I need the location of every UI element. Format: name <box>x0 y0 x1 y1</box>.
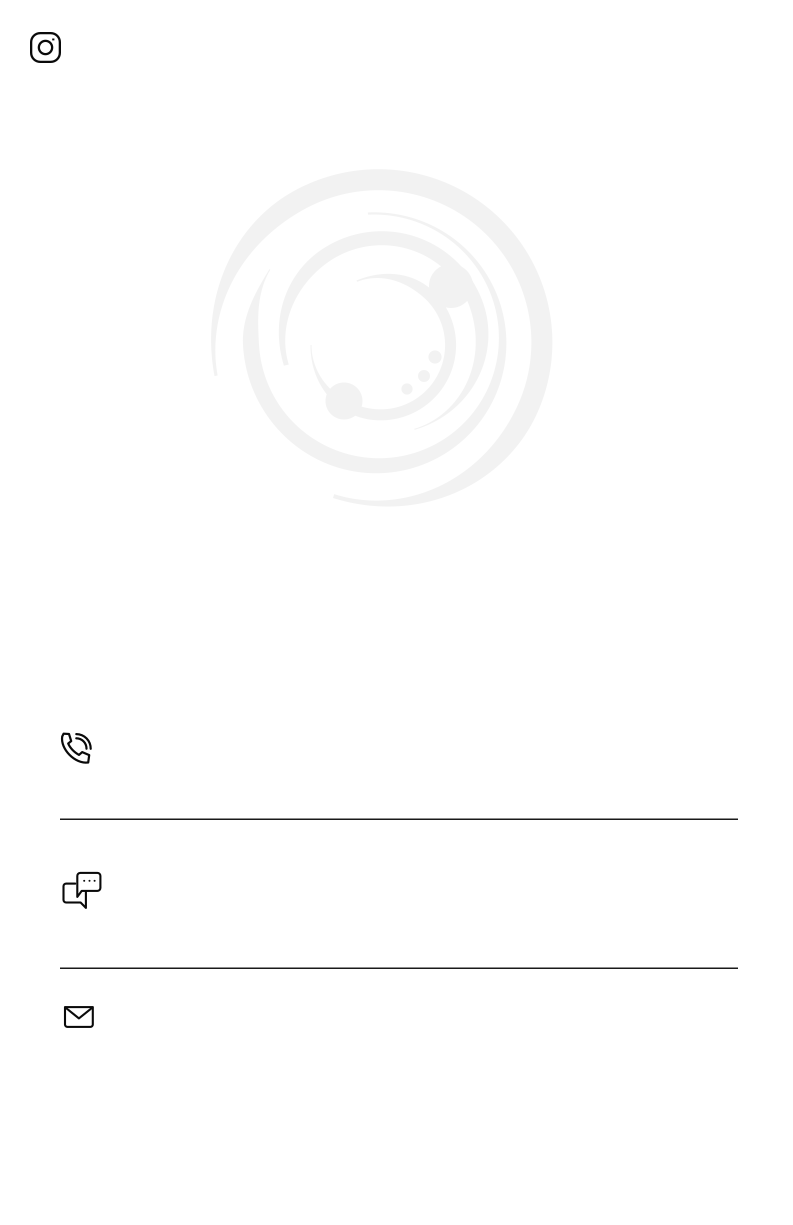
button[interactable]: Chat with us <box>60 820 738 967</box>
button[interactable]: Call us <box>60 676 738 818</box>
button[interactable]: Camera <box>0 0 73 75</box>
button[interactable]: Email us <box>60 969 738 1109</box>
